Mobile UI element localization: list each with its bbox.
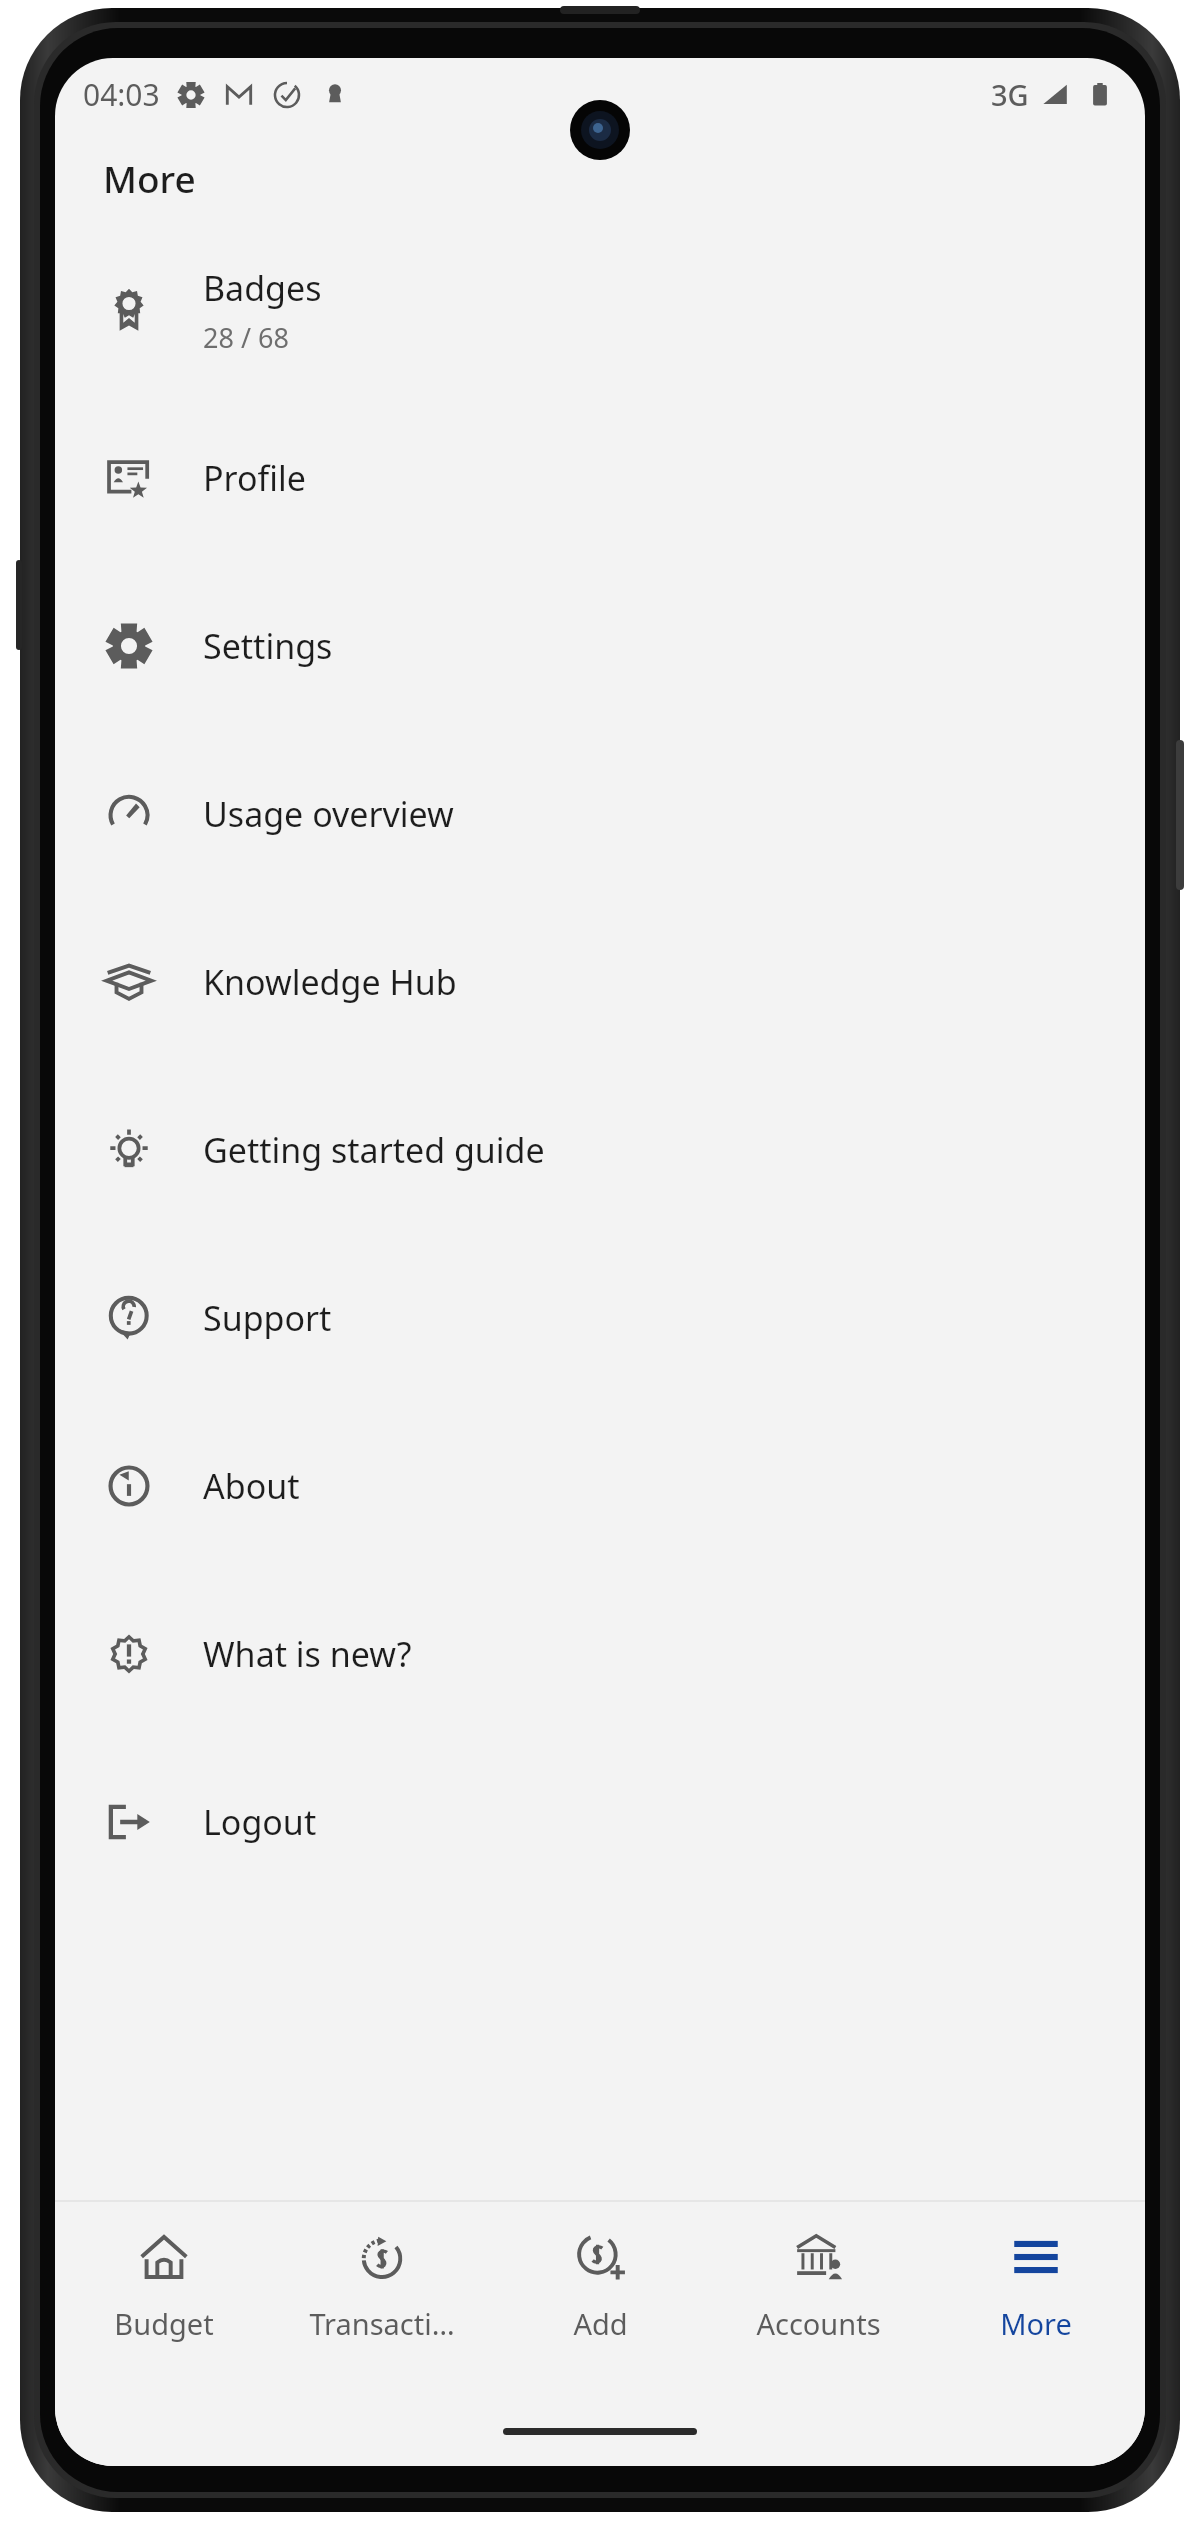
button[interactable]: Accounts — [709, 2202, 927, 2408]
staticText: 28 / 68 — [203, 319, 289, 356]
staticText: More — [103, 153, 196, 203]
staticText: 04:03 — [83, 74, 160, 115]
staticText: Settings — [203, 623, 333, 669]
button[interactable]: Badges — [55, 226, 1145, 394]
button[interactable]: Transacti… — [273, 2202, 491, 2408]
staticText: Budget — [114, 2304, 214, 2343]
button[interactable]: Add — [491, 2202, 709, 2408]
staticText: What is new? — [203, 1631, 412, 1677]
button[interactable]: Settings — [55, 562, 1145, 730]
staticText: Support — [203, 1295, 332, 1341]
staticText: Accounts — [756, 2304, 881, 2343]
button[interactable]: Usage overview — [55, 730, 1145, 898]
staticText: Knowledge Hub — [203, 959, 457, 1005]
staticText: Usage overview — [203, 791, 454, 837]
staticText: Profile — [203, 455, 306, 501]
button[interactable]: Budget — [55, 2202, 273, 2408]
button[interactable]: What is new? — [55, 1570, 1145, 1738]
staticText: Add — [573, 2304, 628, 2343]
staticText: About — [203, 1463, 300, 1509]
staticText: Logout — [203, 1799, 317, 1845]
staticText: Badges — [203, 265, 322, 311]
button[interactable]: Knowledge Hub — [55, 898, 1145, 1066]
staticText: More — [1000, 2304, 1072, 2343]
staticText: Transacti… — [309, 2304, 455, 2343]
button[interactable]: More — [927, 2202, 1145, 2408]
button[interactable]: Support — [55, 1234, 1145, 1402]
staticText: Getting started guide — [203, 1127, 545, 1173]
button[interactable]: About — [55, 1402, 1145, 1570]
button[interactable]: Getting started guide — [55, 1066, 1145, 1234]
button[interactable]: Profile — [55, 394, 1145, 562]
staticText: 3G — [991, 75, 1029, 114]
button[interactable]: Logout — [55, 1738, 1145, 1906]
